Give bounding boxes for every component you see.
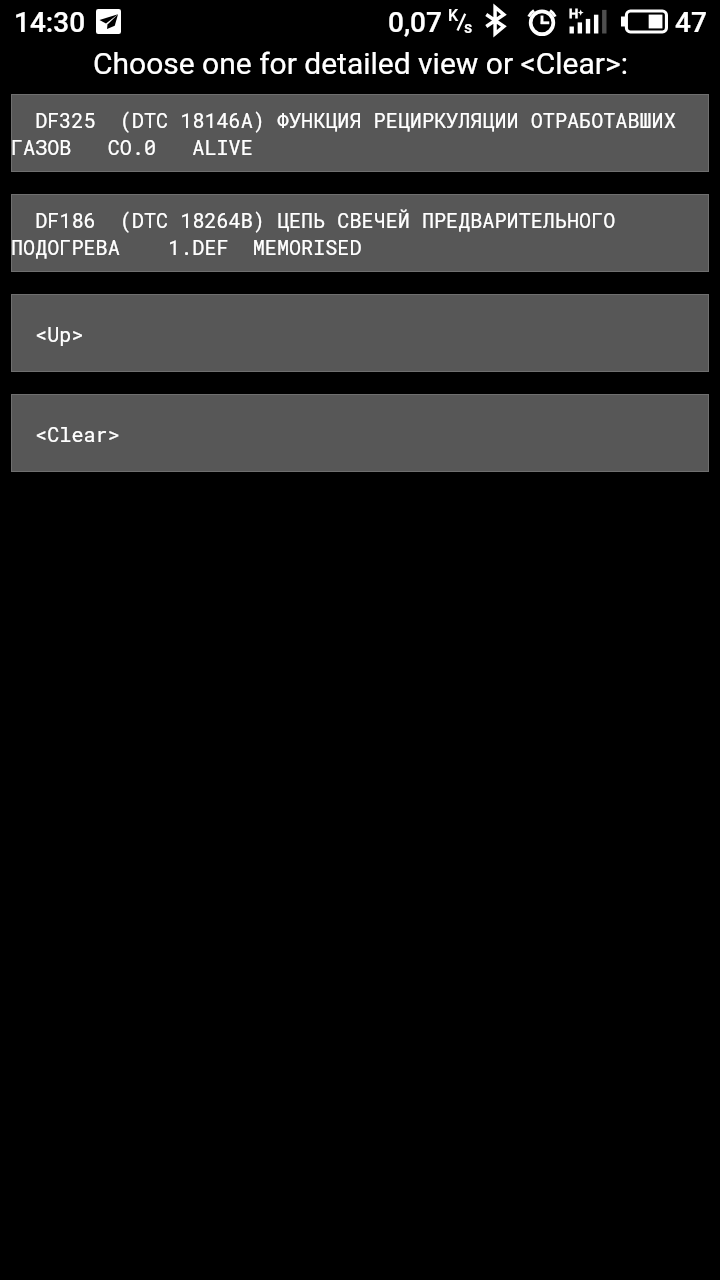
other: Battery [621,9,668,34]
staticText: DF325 (DTC 18146A) ФУНКЦИЯ РЕЦИРКУЛЯЦИИ … [12,107,707,161]
staticText: <Clear> [12,421,120,448]
other: Alarm [528,8,557,37]
staticText: H [569,6,579,21]
button[interactable]: <Up> [12,295,708,371]
other: Telegram [96,9,121,34]
other: Bluetooth [485,7,506,34]
button[interactable]: <Clear> [12,395,708,471]
staticText: s [464,18,473,37]
staticText: DF186 (DTC 18264B) ЦЕПЬ СВЕЧЕЙ ПРЕДВАРИТ… [12,207,707,261]
staticText: 47 [675,6,707,39]
staticText: <Up> [12,321,84,348]
staticText: Choose one for detailed view or <Clear>: [93,46,628,81]
staticText: 0,07 [388,6,442,39]
button[interactable]: DF325 (DTC 18146A) ФУНКЦИЯ РЕЦИРКУЛЯЦИИ … [12,95,708,171]
button[interactable]: DF186 (DTC 18264B) ЦЕПЬ СВЕЧЕЙ ПРЕДВАРИТ… [12,195,708,271]
staticText: 14:30 [14,6,86,39]
staticText: K [448,6,459,25]
other: Signal strength [568,8,608,35]
